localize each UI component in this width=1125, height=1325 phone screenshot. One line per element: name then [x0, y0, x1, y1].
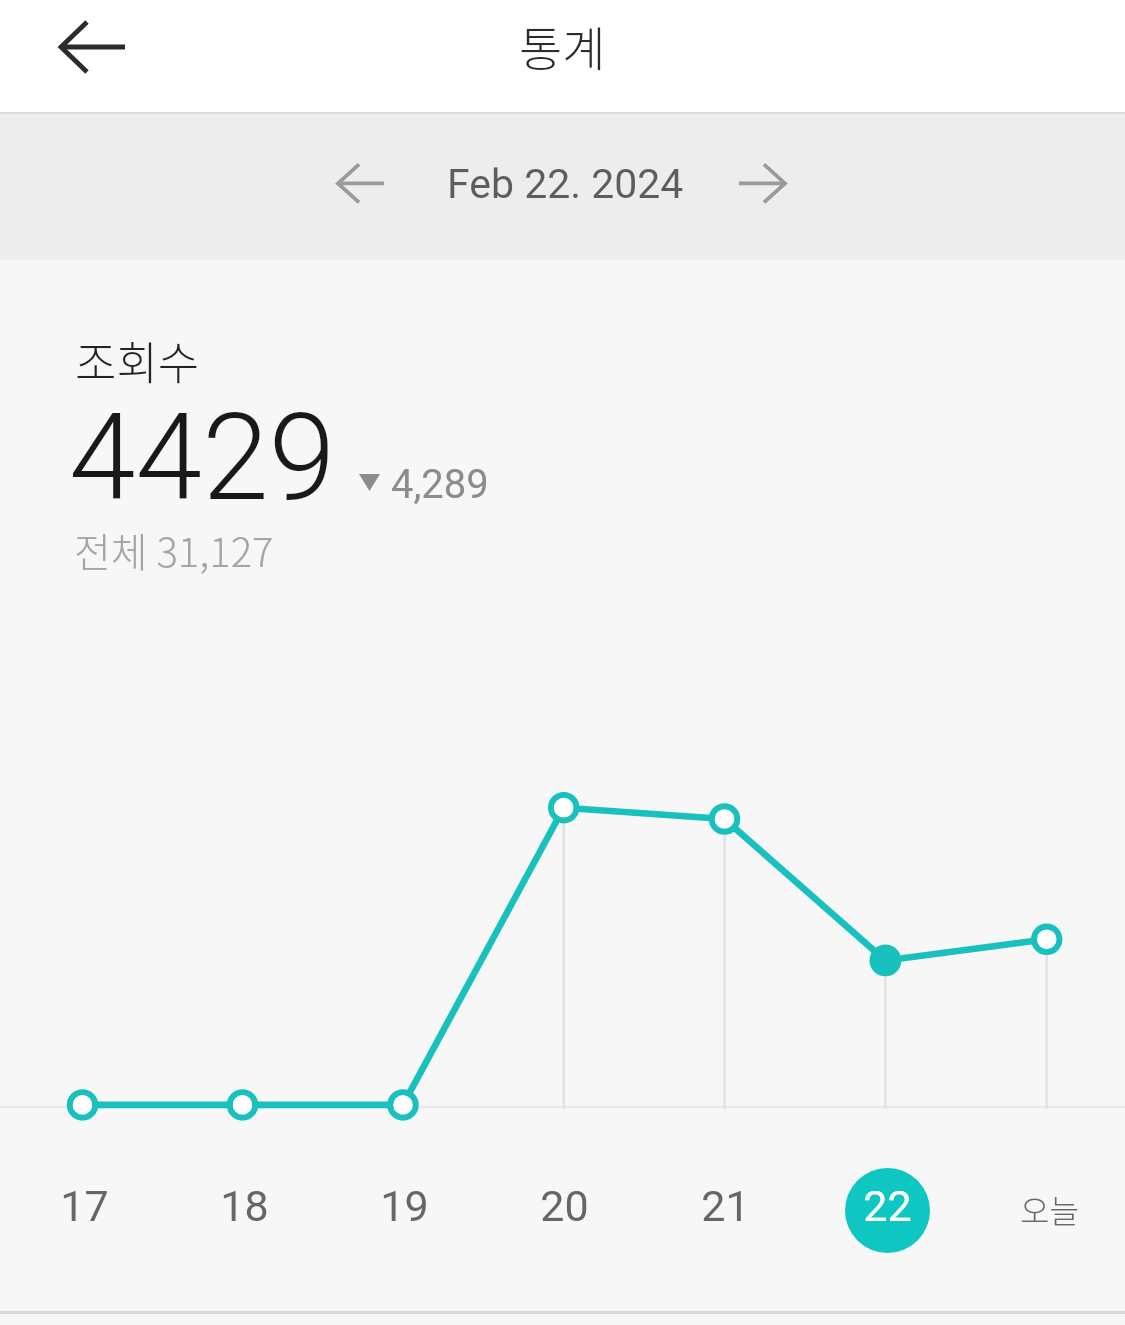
staticText: 20	[540, 1181, 589, 1231]
button[interactable]: 22	[839, 1160, 935, 1256]
button[interactable]: 오늘	[1001, 1160, 1097, 1256]
staticText: 오늘	[1020, 1186, 1079, 1232]
staticText: 4,289	[391, 461, 489, 508]
staticText: 21	[701, 1181, 750, 1231]
button[interactable]: Back	[36, 0, 148, 112]
staticText: 22	[863, 1181, 912, 1231]
staticText: Feb 22. 2024	[447, 160, 684, 208]
staticText: 18	[220, 1181, 269, 1231]
button[interactable]: 17	[36, 1160, 132, 1256]
staticText: 17	[60, 1181, 109, 1231]
button[interactable]: Next date	[716, 142, 808, 234]
staticText: 통계	[519, 11, 606, 79]
staticText: 전체 31,127	[74, 521, 274, 579]
staticText: 4429	[69, 388, 336, 529]
button[interactable]: 21	[677, 1160, 773, 1256]
button[interactable]: 20	[516, 1160, 612, 1256]
button[interactable]: Previous date	[315, 142, 407, 234]
staticText: 조회수	[75, 328, 200, 393]
button[interactable]: 19	[356, 1160, 452, 1256]
staticText: 19	[380, 1181, 429, 1231]
button[interactable]: 18	[196, 1160, 292, 1256]
